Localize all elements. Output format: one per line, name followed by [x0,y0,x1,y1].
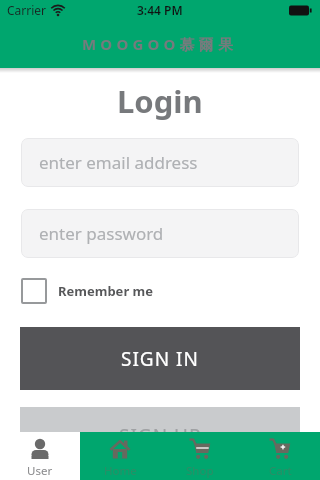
staticText: Carrier [7,2,47,18]
staticText: Cart [269,463,292,479]
button[interactable]: SIGN IN [20,327,300,390]
staticText: Home [104,463,137,479]
button[interactable]: Cart [240,432,320,480]
staticText: SIGN UP [119,423,202,449]
button[interactable]: Shop [160,432,240,480]
staticText: Login [117,80,203,122]
button[interactable]: enter email address [21,138,299,187]
staticText: Remember me [58,282,154,300]
button[interactable]: Home [80,432,160,480]
staticText: enter password [39,222,164,245]
button[interactable]: SIGN UP [20,407,300,470]
staticText: User [27,463,53,479]
button[interactable]: User [0,432,80,480]
staticText: SIGN IN [121,346,199,372]
button[interactable]: enter password [21,209,299,258]
staticText: MOOGOO慕爾果 [82,34,238,54]
staticText: enter email address [39,151,198,174]
staticText: 3:44 PM [137,2,183,18]
staticText: Shop [186,463,214,479]
button[interactable]: Remember me [21,278,154,304]
